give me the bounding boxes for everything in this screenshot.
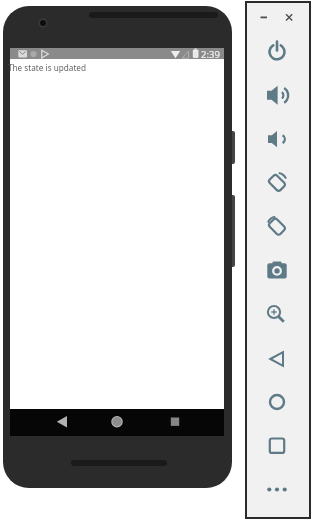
button[interactable] — [257, 340, 297, 376]
button[interactable] — [257, 471, 297, 507]
button[interactable] — [102, 410, 132, 436]
button[interactable] — [283, 11, 295, 23]
button[interactable] — [48, 410, 78, 436]
button[interactable] — [157, 410, 187, 436]
button[interactable] — [257, 77, 297, 113]
button[interactable] — [257, 384, 297, 420]
staticText: The state is updated — [8, 62, 87, 73]
button[interactable] — [257, 165, 297, 201]
button[interactable] — [257, 121, 297, 157]
staticText: 2:39 — [201, 48, 220, 61]
button[interactable] — [257, 428, 297, 464]
button[interactable] — [257, 253, 297, 289]
button[interactable] — [258, 11, 270, 23]
button[interactable] — [257, 33, 297, 69]
button[interactable] — [257, 297, 297, 333]
button[interactable] — [257, 209, 297, 245]
